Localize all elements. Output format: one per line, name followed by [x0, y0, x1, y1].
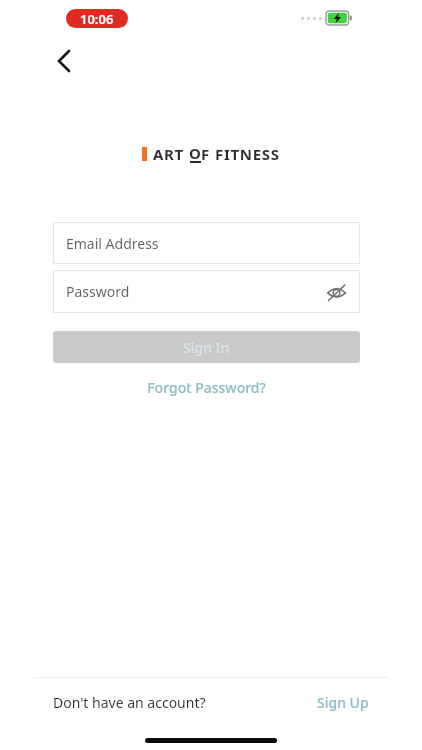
staticText: Sign Up [317, 693, 369, 712]
staticText: Don't have an account? [53, 693, 206, 712]
staticText: Email Address [66, 234, 159, 253]
button[interactable]: Forgot Password? [53, 376, 360, 398]
staticText: F [201, 144, 210, 164]
staticText: ART [153, 144, 184, 164]
button[interactable]: Password [53, 270, 360, 313]
staticText: 10:06 [80, 10, 114, 28]
button[interactable]: Back [46, 43, 82, 79]
staticText: Password [66, 282, 130, 301]
button[interactable]: Show password [320, 276, 352, 308]
button[interactable]: Sign Up [313, 689, 373, 716]
staticText: Forgot Password? [147, 378, 266, 397]
staticText: O [189, 143, 201, 163]
staticText: FITNESS [215, 144, 280, 164]
button[interactable]: Sign In [53, 331, 360, 363]
button[interactable]: Email Address [53, 222, 360, 264]
staticText: Sign In [183, 338, 230, 357]
